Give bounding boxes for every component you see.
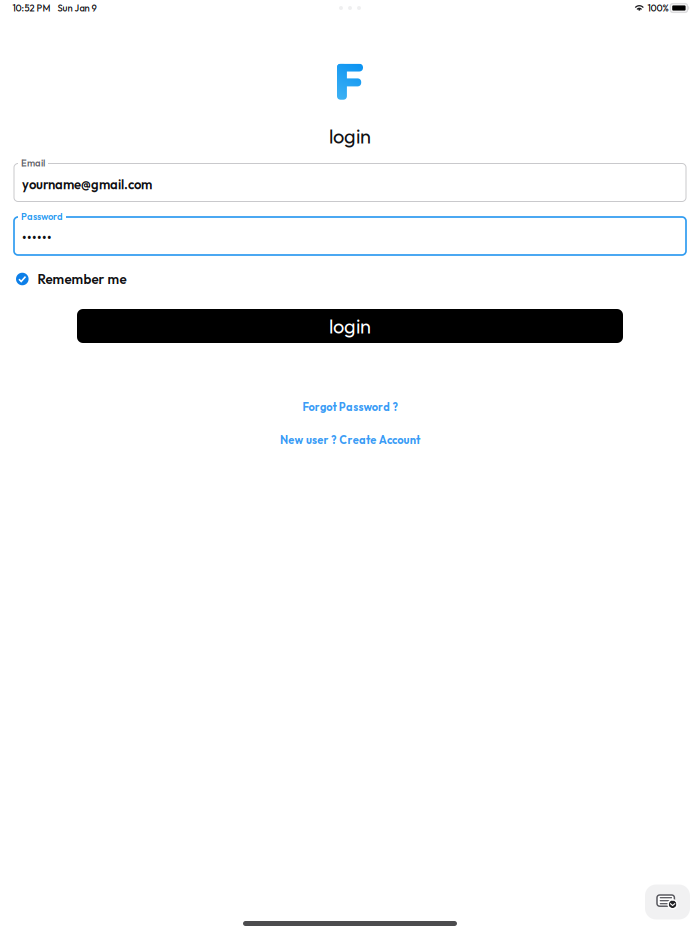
staticText: login (329, 124, 371, 149)
staticText: 10:52 PM (12, 2, 50, 14)
button[interactable]: •••••• (14, 217, 686, 255)
staticText: yourname@gmail.com (22, 176, 152, 193)
staticText: New user ? Create Account (280, 433, 420, 447)
staticText: Forgot Password ? (302, 400, 398, 414)
button[interactable]: New user ? Create Account (270, 428, 430, 452)
button[interactable]: yourname@gmail.com (14, 163, 686, 201)
button[interactable]: Forgot Password ? (292, 395, 408, 419)
staticText: Sun Jan 9 (57, 2, 96, 14)
staticText: 100% (647, 2, 668, 14)
staticText: login (329, 313, 371, 339)
staticText: Email (21, 157, 45, 169)
button[interactable]: Hide keyboard (645, 884, 690, 919)
button[interactable]: login (77, 309, 623, 343)
staticText: Password (21, 210, 63, 222)
button[interactable]: Remember me (0, 268, 700, 290)
staticText: Remember me (38, 271, 127, 287)
staticText: •••••• (22, 230, 52, 246)
